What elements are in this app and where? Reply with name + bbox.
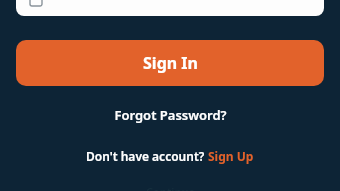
staticText: Forgot Password? — [114, 106, 227, 124]
button[interactable]: Sign In — [16, 40, 324, 86]
staticText: Don't have account? — [86, 148, 208, 164]
staticText: Sign In — [143, 52, 198, 74]
button[interactable]: Remember me checkbox — [30, 0, 42, 6]
button[interactable]: Remember me checkbox — [16, 0, 324, 16]
button[interactable]: Sign Up — [208, 148, 254, 164]
button[interactable]: Forgot Password? — [0, 104, 340, 126]
staticText: Sign Up — [208, 148, 254, 164]
